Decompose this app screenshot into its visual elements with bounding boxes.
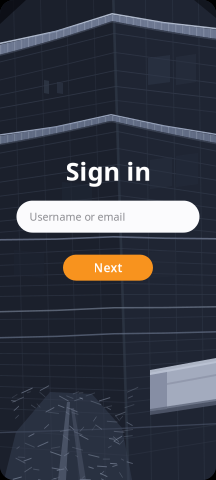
button[interactable]: Next [63,255,153,281]
button[interactable]: Username or email [16,201,199,233]
staticText: Next [93,260,122,276]
staticText: Username or email [29,210,125,224]
staticText: Sign in [65,154,150,188]
